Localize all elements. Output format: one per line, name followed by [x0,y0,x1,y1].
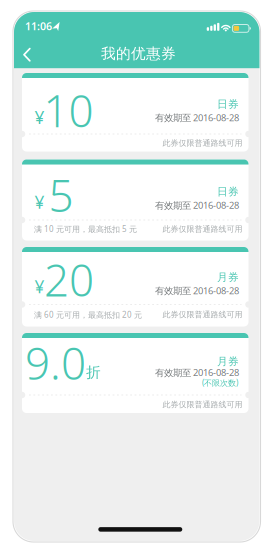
staticText: 日券 [217,185,239,198]
staticText: 有效期至 2016-08-28 [155,366,239,379]
staticText: 日券 [217,98,239,111]
staticText: 9.0 [25,333,86,392]
staticText: 此券仅限普通路线可用 [162,138,242,148]
button[interactable]: ¥ [22,247,248,326]
staticText: 折 [86,363,101,381]
button[interactable]: ¥ [22,73,248,151]
staticText: ¥ [34,190,44,213]
staticText: 有效期至 2016-08-28 [155,199,239,211]
staticText: 满 60 元可用，最高抵扣 20 元 [34,309,142,320]
staticText: (不限次数) [202,377,238,388]
staticText: 20 [44,250,94,309]
staticText: ¥ [34,106,44,129]
button[interactable]: ¥ [22,159,248,240]
staticText: 我的优惠券 [101,44,176,62]
staticText: 有效期至 2016-08-28 [155,284,239,297]
staticText: 5 [48,166,73,224]
staticText: 满 10 元可用，最高抵扣 5 元 [34,224,137,234]
staticText: 此券仅限普通路线可用 [162,400,242,409]
button[interactable]: Back [15,43,39,67]
staticText: 月券 [217,355,239,368]
staticText: 此券仅限普通路线可用 [162,310,242,320]
staticText: ¥ [34,275,44,298]
button[interactable]: 9.0 [22,333,248,413]
staticText: 此券仅限普通路线可用 [162,224,242,234]
staticText: 11:06 [25,19,52,33]
staticText: 有效期至 2016-08-28 [155,111,239,124]
staticText: 10 [43,81,93,139]
staticText: 月券 [217,271,239,284]
